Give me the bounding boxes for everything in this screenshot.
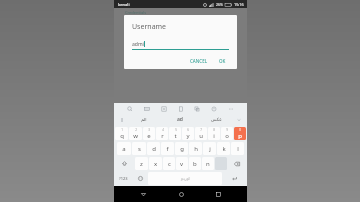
staticText: v xyxy=(180,160,184,168)
staticText: 5 xyxy=(175,128,177,132)
button[interactable]: GIF xyxy=(159,104,169,114)
staticText: l xyxy=(237,145,239,153)
button[interactable]: Voice input xyxy=(117,114,127,125)
staticText: z xyxy=(140,160,143,168)
staticText: ?123 xyxy=(119,176,128,181)
button[interactable]: Clipboard xyxy=(176,104,186,114)
button[interactable]: 9 xyxy=(221,127,233,140)
button[interactable]: Stickers xyxy=(142,104,152,114)
staticText: 2 xyxy=(135,128,137,132)
staticText: a xyxy=(122,145,126,153)
button[interactable]: h xyxy=(189,142,202,155)
button[interactable]: الم xyxy=(127,114,161,125)
staticText: CANCEL xyxy=(190,58,208,64)
staticText: x xyxy=(154,160,158,168)
staticText: OK xyxy=(219,58,226,64)
staticText: 4 xyxy=(162,128,164,132)
staticText: 3 xyxy=(148,128,150,132)
staticText: c xyxy=(168,160,171,168)
button[interactable]: 1 xyxy=(115,127,128,140)
staticText: e xyxy=(147,132,151,140)
staticText: 7 xyxy=(200,128,202,132)
staticText: 8 xyxy=(213,128,215,132)
staticText: u xyxy=(199,132,203,140)
button[interactable]: x xyxy=(149,157,162,170)
staticText: kenali xyxy=(118,2,130,7)
button[interactable]: 7 xyxy=(195,127,207,140)
staticText: s xyxy=(138,145,141,153)
button[interactable]: Emoji xyxy=(133,172,147,185)
button[interactable]: 4 xyxy=(156,127,168,140)
staticText: admi xyxy=(132,41,144,48)
button[interactable]: Recent apps xyxy=(210,186,226,202)
button[interactable]: Back xyxy=(135,186,151,202)
button[interactable]: f xyxy=(161,142,174,155)
staticText: r xyxy=(161,132,164,140)
button[interactable]: More options xyxy=(226,104,236,114)
staticText: q xyxy=(120,132,124,140)
button[interactable]: s xyxy=(132,142,146,155)
staticText: h xyxy=(194,145,198,153)
staticText: y xyxy=(186,132,190,140)
button[interactable]: g xyxy=(175,142,188,155)
staticText: عكس xyxy=(211,117,222,122)
staticText: ad xyxy=(177,116,183,123)
button[interactable]: Enter xyxy=(223,172,246,185)
staticText: p xyxy=(238,132,242,140)
button[interactable]: d xyxy=(147,142,160,155)
button[interactable]: a xyxy=(117,142,131,155)
staticText: الم xyxy=(141,117,147,122)
staticText: 1 xyxy=(121,128,123,132)
staticText: f xyxy=(166,145,169,153)
button[interactable]: 5 xyxy=(169,127,181,140)
staticText: 0 xyxy=(239,128,241,132)
button[interactable]: Search xyxy=(125,104,135,114)
staticText: g xyxy=(180,145,184,153)
button[interactable]: 2 xyxy=(129,127,142,140)
staticText: Username xyxy=(132,22,167,32)
button[interactable]: ad xyxy=(161,114,199,125)
button[interactable]: n xyxy=(202,157,214,170)
button[interactable]: Translate xyxy=(192,104,202,114)
button[interactable]: ?123 xyxy=(115,172,132,185)
button[interactable]: l xyxy=(231,142,244,155)
button[interactable]: Shift xyxy=(115,157,134,170)
button[interactable]: OK xyxy=(216,56,229,66)
staticText: n xyxy=(206,160,210,168)
button[interactable]: j xyxy=(203,142,216,155)
staticText: 9 xyxy=(226,128,228,132)
button[interactable]: Expand suggestions xyxy=(234,114,244,125)
button[interactable]: Space xyxy=(148,172,222,185)
button[interactable]: b xyxy=(189,157,201,170)
staticText: ﺍﻭﺭﺩﻭ xyxy=(181,176,190,181)
button[interactable]: 6 xyxy=(182,127,194,140)
button[interactable]: Backspace xyxy=(228,157,246,170)
staticText: i xyxy=(213,132,215,140)
button[interactable]: عكس xyxy=(199,114,234,125)
staticText: 15:16 xyxy=(234,2,244,7)
button[interactable]: Home xyxy=(173,186,189,202)
button[interactable]: c xyxy=(163,157,175,170)
staticText: k xyxy=(222,145,226,153)
staticText: t xyxy=(174,132,177,140)
button[interactable]: 8 xyxy=(208,127,220,140)
button[interactable]: CANCEL xyxy=(187,56,211,66)
staticText: d xyxy=(152,145,156,153)
button[interactable]: 0 xyxy=(234,127,246,140)
staticText: o xyxy=(225,132,229,140)
button[interactable]: v xyxy=(176,157,188,170)
staticText: 26% xyxy=(216,2,223,7)
staticText: b xyxy=(193,160,197,168)
staticText: Credentials xyxy=(125,10,147,15)
button[interactable]: Settings xyxy=(209,104,219,114)
button[interactable]: 3 xyxy=(143,127,155,140)
button[interactable]: k xyxy=(217,142,230,155)
button[interactable]: z xyxy=(135,157,148,170)
staticText: 6 xyxy=(187,128,189,132)
staticText: w xyxy=(133,132,138,140)
staticText: j xyxy=(209,145,211,153)
